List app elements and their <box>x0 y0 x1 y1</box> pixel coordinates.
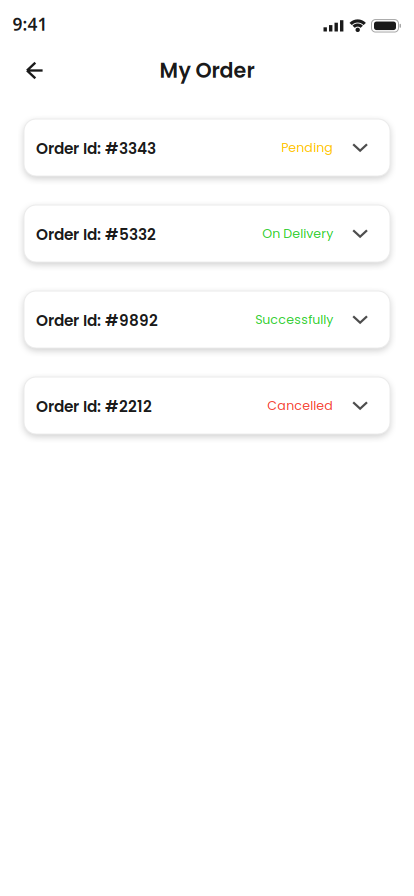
button[interactable]: Order Id: #3343 <box>24 119 390 176</box>
staticText: Order Id: #3343 <box>36 138 156 159</box>
button[interactable]: Order Id: #2212 <box>24 377 390 434</box>
button[interactable]: Back <box>0 51 55 90</box>
staticText: Cancelled <box>267 397 333 414</box>
staticText: Order Id: #5332 <box>36 224 156 245</box>
staticText: Order Id: #2212 <box>36 396 152 417</box>
staticText: My Order <box>159 56 254 85</box>
staticText: 9:41 <box>12 12 47 35</box>
button[interactable]: Order Id: #5332 <box>24 205 390 262</box>
staticText: Order Id: #9892 <box>36 310 158 331</box>
staticText: Pending <box>281 139 333 156</box>
staticText: Successfully <box>255 311 333 328</box>
button[interactable]: Order Id: #9892 <box>24 291 390 348</box>
staticText: On Delivery <box>262 225 333 242</box>
